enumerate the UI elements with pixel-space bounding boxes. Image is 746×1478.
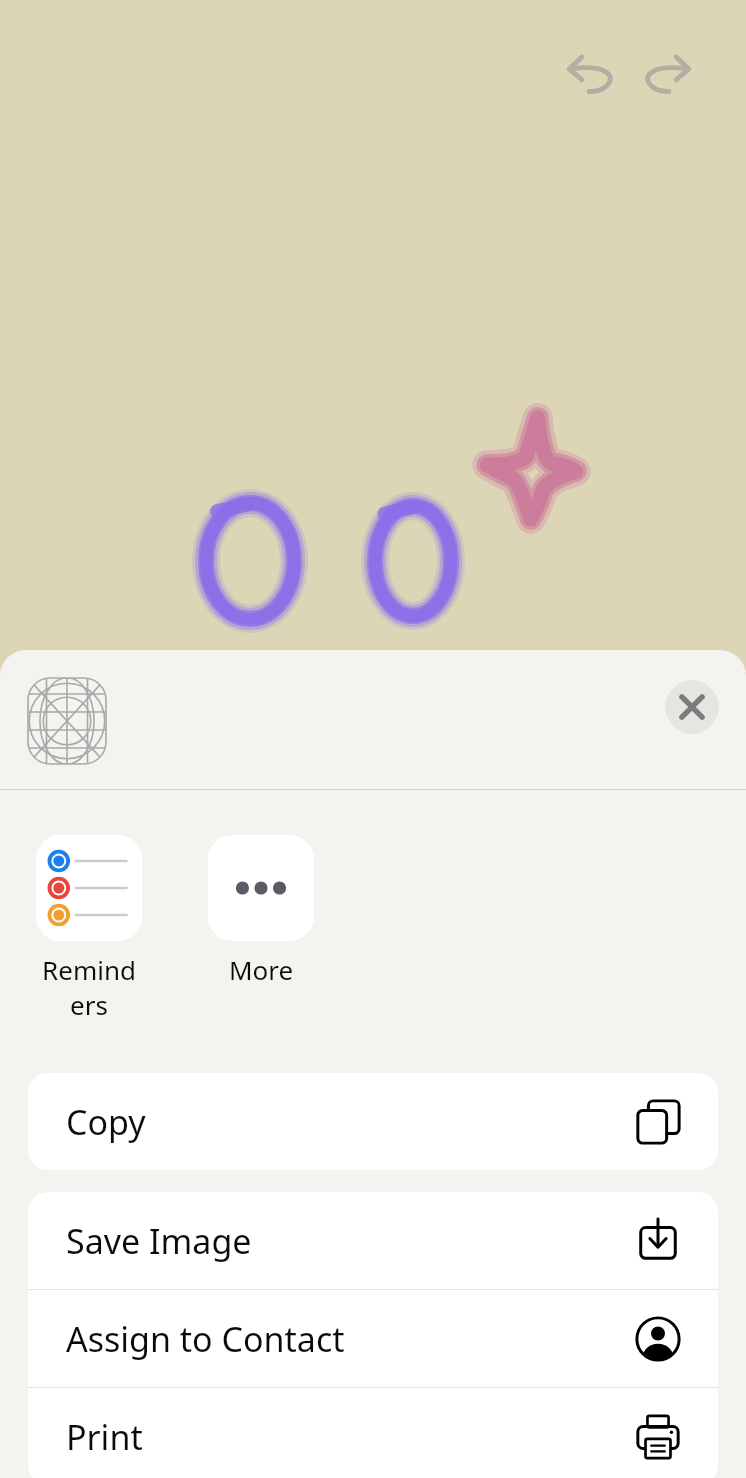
- button[interactable]: Reminders: [36, 835, 142, 1022]
- button[interactable]: Close: [665, 680, 719, 734]
- button[interactable]: More: [208, 835, 314, 987]
- staticText: More: [208, 952, 314, 987]
- staticText: Copy: [66, 1099, 146, 1145]
- button[interactable]: Redo: [634, 40, 700, 106]
- staticText: Save Image: [66, 1218, 252, 1264]
- button[interactable]: Print: [28, 1388, 718, 1478]
- staticText: Print: [66, 1414, 143, 1460]
- button[interactable]: Undo: [558, 40, 624, 106]
- staticText: Assign to Contact: [66, 1316, 345, 1362]
- button[interactable]: Assign to Contact: [28, 1290, 718, 1387]
- button[interactable]: Save Image: [28, 1192, 718, 1289]
- staticText: Reminders: [36, 952, 142, 1022]
- button[interactable]: Copy: [28, 1073, 718, 1170]
